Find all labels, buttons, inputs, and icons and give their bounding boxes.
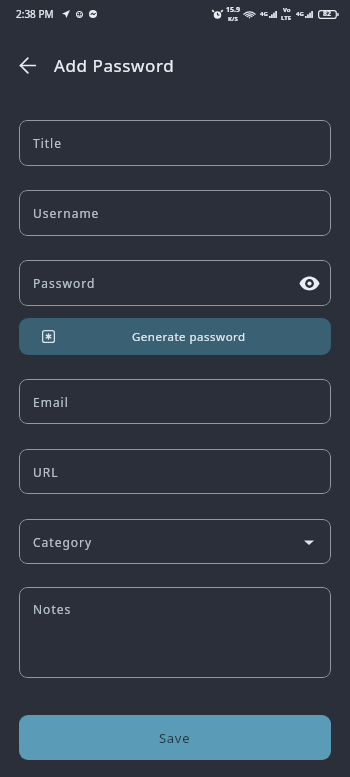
button[interactable]: Notes [19,587,331,678]
staticText: 4G [260,10,268,18]
staticText: Category [33,534,93,550]
button[interactable]: Category [19,519,331,564]
button[interactable]: Email [19,379,331,424]
other: Show password [299,273,320,294]
staticText: 15.9 [226,5,240,15]
button[interactable]: Save [19,715,331,760]
staticText: Password [33,275,96,291]
button[interactable]: Password [19,260,331,306]
staticText: 4G [296,10,304,18]
button[interactable]: Username [19,190,331,236]
staticText: Username [33,205,100,221]
button[interactable]: Title [19,120,331,166]
staticText: Title [33,135,62,151]
staticText: Vo [283,6,291,14]
staticText: Add Password [54,54,175,77]
staticText: Save [159,729,191,747]
staticText: K/S [228,15,238,23]
button[interactable]: Generate password [19,318,331,355]
staticText: 82 [323,9,332,19]
staticText: Notes [33,601,72,617]
other: Expand category [302,535,316,549]
staticText: LTE [281,14,292,22]
staticText: URL [33,464,59,480]
staticText: Email [33,394,69,410]
button[interactable]: URL [19,449,331,494]
button[interactable]: Back [11,49,43,81]
staticText: Generate password [132,329,246,345]
staticText: 2:38 PM [16,7,54,21]
